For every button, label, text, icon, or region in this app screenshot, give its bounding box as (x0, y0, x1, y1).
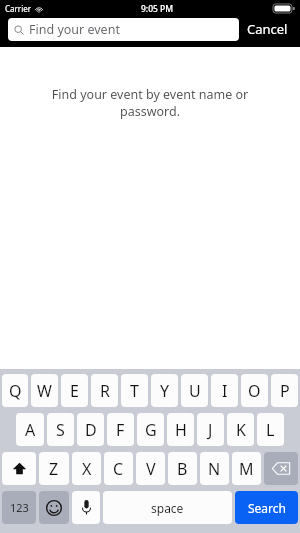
staticText: V (146, 458, 156, 480)
staticText: D (85, 419, 97, 441)
staticText: H (175, 419, 187, 441)
staticText: N (208, 458, 221, 480)
staticText: O (248, 380, 261, 402)
staticText: Y (160, 380, 170, 402)
staticText: E (70, 380, 79, 402)
staticText: Carrier (5, 3, 32, 14)
button[interactable]: Shift (2, 452, 36, 485)
staticText: U (189, 380, 201, 402)
staticText: M (239, 458, 254, 480)
staticText: Find your event (29, 21, 120, 38)
button[interactable]: C (104, 452, 133, 485)
staticText: A (25, 419, 36, 441)
button[interactable]: Emoji (39, 491, 69, 524)
staticText: G (145, 419, 157, 441)
button[interactable]: T (121, 374, 148, 407)
button[interactable]: L (257, 413, 284, 446)
button[interactable]: Z (39, 452, 69, 485)
staticText: Search (248, 500, 286, 516)
staticText: I (222, 380, 228, 402)
button[interactable]: I (211, 374, 238, 407)
staticText: C (113, 458, 124, 480)
button[interactable]: Q (2, 374, 28, 407)
button[interactable]: O (241, 374, 268, 407)
staticText: Q (9, 380, 22, 402)
staticText: 123 (10, 500, 29, 515)
button[interactable]: P (271, 374, 298, 407)
button[interactable]: H (167, 413, 194, 446)
button[interactable]: A (16, 413, 44, 446)
staticText: K (236, 419, 246, 441)
button[interactable]: K (227, 413, 254, 446)
button[interactable]: X (72, 452, 101, 485)
button[interactable]: F (107, 413, 134, 446)
staticText: Cancel (247, 20, 288, 38)
button[interactable]: Y (151, 374, 178, 407)
button[interactable]: E (61, 374, 88, 407)
button[interactable]: U (181, 374, 208, 407)
button[interactable]: V (136, 452, 165, 485)
staticText: space (151, 500, 184, 516)
button[interactable]: Find your event (8, 18, 239, 41)
button[interactable]: Cancel (239, 16, 296, 42)
staticText: F (116, 419, 125, 441)
button[interactable]: Search (235, 491, 298, 524)
staticText: J (208, 419, 213, 441)
button[interactable]: S (47, 413, 74, 446)
staticText: T (130, 380, 139, 402)
button[interactable]: N (200, 452, 229, 485)
button[interactable]: 123 (2, 491, 36, 524)
staticText: P (280, 380, 290, 402)
button[interactable]: Delete (264, 452, 298, 485)
staticText: R (100, 380, 110, 402)
staticText: X (82, 458, 92, 480)
button[interactable]: W (31, 374, 58, 407)
staticText: S (56, 419, 65, 441)
staticText: Find your event by event name or passwor… (22, 86, 278, 120)
button[interactable]: space (103, 491, 232, 524)
button[interactable]: M (232, 452, 261, 485)
button[interactable]: R (91, 374, 118, 407)
button[interactable]: Dictation (72, 491, 100, 524)
button[interactable]: J (197, 413, 224, 446)
staticText: B (177, 458, 188, 480)
staticText: Z (49, 458, 59, 480)
button[interactable]: G (137, 413, 164, 446)
staticText: L (266, 419, 275, 441)
button[interactable]: D (77, 413, 104, 446)
staticText: W (37, 380, 52, 402)
button[interactable]: B (168, 452, 197, 485)
staticText: 9:05 PM (141, 3, 174, 15)
